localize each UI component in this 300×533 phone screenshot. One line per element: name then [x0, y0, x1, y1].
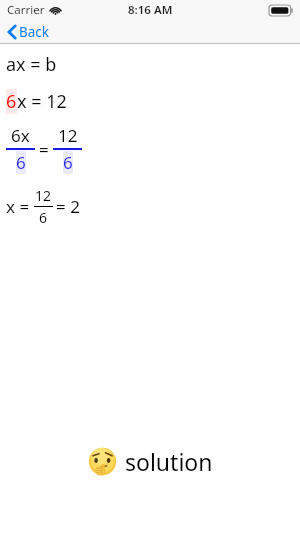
button[interactable]: Thinking face — [0, 442, 300, 481]
staticText: solution — [125, 446, 213, 477]
staticText: = — [39, 138, 49, 161]
staticText: 12 — [58, 124, 78, 147]
staticText: 6 — [39, 208, 48, 227]
staticText: ax = b — [6, 52, 57, 77]
staticText: x = — [6, 195, 30, 218]
button[interactable]: Back — [5, 21, 53, 43]
staticText: Back — [19, 23, 50, 41]
staticText: 8:16 AM — [128, 2, 173, 18]
staticText: x = 12 — [17, 89, 67, 114]
staticText: 6 — [63, 151, 73, 174]
staticText: 6x — [11, 124, 30, 147]
staticText: 12 — [35, 186, 52, 205]
staticText: = 2 — [56, 195, 80, 218]
staticText: 6 — [6, 89, 17, 114]
staticText: Carrier — [7, 2, 45, 18]
other: Thinking face — [88, 447, 117, 476]
staticText: 6 — [16, 151, 26, 174]
